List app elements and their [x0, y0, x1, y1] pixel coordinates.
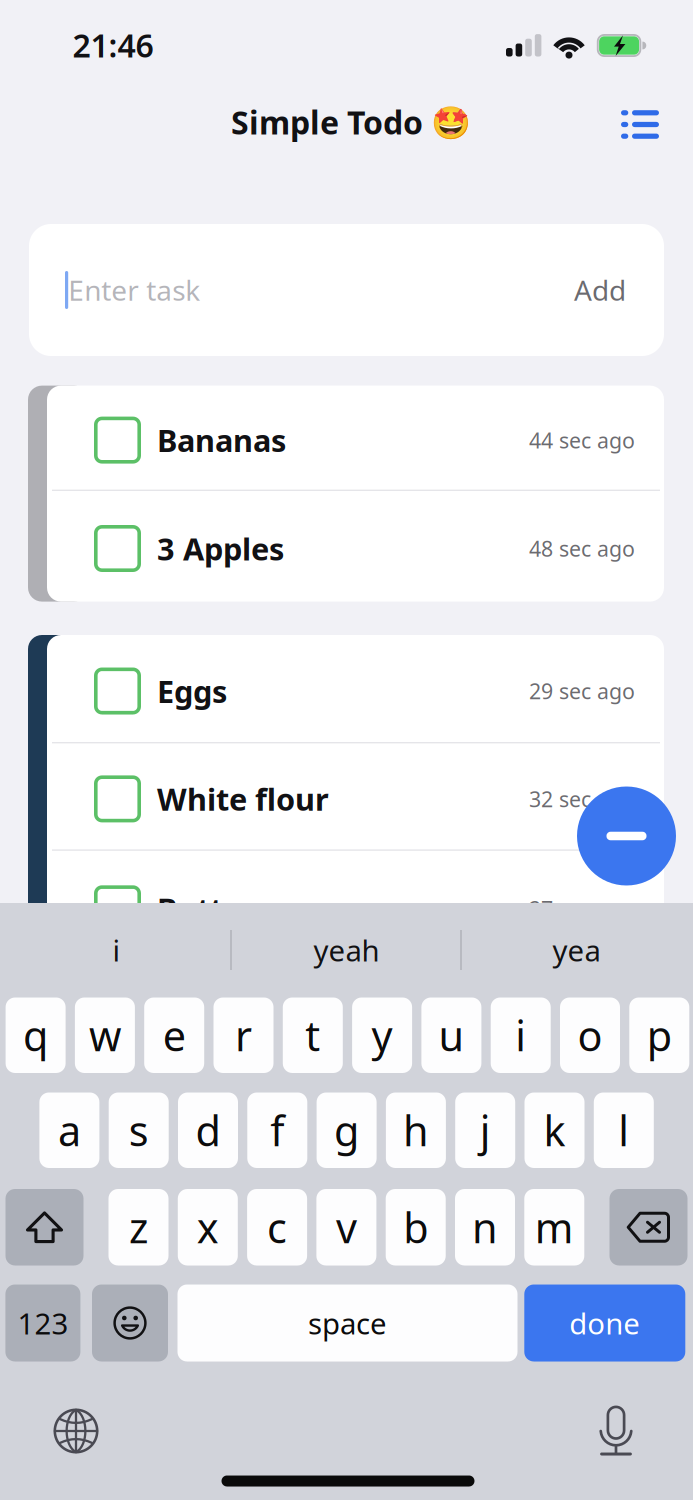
- button[interactable]: o: [560, 997, 620, 1073]
- button[interactable]: r: [213, 997, 273, 1073]
- button[interactable]: h: [386, 1092, 446, 1168]
- button[interactable]: n: [455, 1189, 515, 1265]
- button[interactable]: b: [386, 1189, 446, 1265]
- button[interactable]: Add: [560, 259, 640, 321]
- button[interactable]: l: [594, 1092, 654, 1168]
- button[interactable]: Eggs: [47, 635, 664, 742]
- staticText: u: [438, 1008, 464, 1063]
- staticText: Simple Todo 🤩: [231, 101, 471, 143]
- button[interactable]: q: [6, 997, 66, 1073]
- button[interactable]: t: [283, 997, 343, 1073]
- staticText: o: [577, 1008, 602, 1063]
- button[interactable]: a: [39, 1092, 99, 1168]
- staticText: Enter task: [68, 271, 200, 309]
- button[interactable]: p: [629, 997, 689, 1073]
- staticText: Eggs: [157, 671, 227, 711]
- button[interactable]: Emoji: [92, 1284, 168, 1361]
- staticText: g: [334, 1103, 359, 1158]
- staticText: f: [270, 1103, 284, 1158]
- staticText: White flour: [157, 778, 329, 819]
- staticText: t: [305, 1008, 320, 1063]
- staticText: 3 Apples: [157, 528, 284, 569]
- button[interactable]: Shift: [5, 1189, 83, 1265]
- staticText: Bananas: [157, 420, 286, 460]
- button[interactable]: c: [247, 1189, 307, 1265]
- staticText: 27 sec ago: [529, 895, 635, 923]
- staticText: m: [535, 1200, 574, 1255]
- button[interactable]: space: [177, 1284, 517, 1361]
- staticText: yea: [552, 930, 600, 969]
- button[interactable]: v: [316, 1189, 376, 1265]
- staticText: e: [163, 1008, 186, 1063]
- staticText: yeah: [313, 930, 379, 969]
- staticText: 48 sec ago: [529, 534, 635, 563]
- button[interactable]: Bananas: [47, 386, 664, 490]
- button[interactable]: 3 Apples: [47, 491, 664, 601]
- button[interactable]: x: [178, 1189, 238, 1265]
- staticText: b: [403, 1200, 428, 1255]
- staticText: 44 sec ago: [529, 426, 635, 454]
- staticText: a: [58, 1103, 81, 1158]
- staticText: done: [569, 1303, 640, 1342]
- staticText: l: [618, 1103, 629, 1158]
- staticText: 123: [17, 1303, 68, 1342]
- button[interactable]: f: [247, 1092, 307, 1168]
- button[interactable]: yeah: [232, 915, 461, 985]
- staticText: 32 sec ago: [529, 785, 635, 813]
- staticText: w: [89, 1008, 121, 1063]
- button[interactable]: w: [75, 997, 135, 1073]
- button[interactable]: m: [524, 1189, 584, 1265]
- button[interactable]: g: [317, 1092, 377, 1168]
- button[interactable]: List options: [608, 96, 672, 152]
- button[interactable]: k: [524, 1092, 584, 1168]
- staticText: q: [23, 1008, 48, 1063]
- staticText: p: [647, 1008, 672, 1063]
- button[interactable]: yea: [462, 915, 691, 985]
- staticText: z: [129, 1200, 148, 1255]
- staticText: 21:46: [72, 24, 153, 66]
- staticText: Butter: [157, 888, 255, 929]
- button[interactable]: Remove completed: [577, 786, 676, 885]
- staticText: j: [480, 1103, 491, 1158]
- button[interactable]: d: [178, 1092, 238, 1168]
- button[interactable]: u: [421, 997, 481, 1073]
- staticText: h: [403, 1103, 429, 1158]
- button[interactable]: Butter: [47, 851, 664, 962]
- staticText: space: [308, 1303, 387, 1342]
- button[interactable]: White flour: [47, 743, 664, 849]
- staticText: x: [197, 1200, 219, 1255]
- staticText: s: [129, 1103, 149, 1158]
- staticText: k: [543, 1103, 565, 1158]
- button[interactable]: y: [352, 997, 412, 1073]
- staticText: 29 sec ago: [529, 677, 635, 705]
- staticText: i: [112, 930, 120, 969]
- button[interactable]: s: [109, 1092, 169, 1168]
- button[interactable]: j: [455, 1092, 515, 1168]
- button[interactable]: Delete: [609, 1189, 687, 1265]
- button[interactable]: i: [491, 997, 551, 1073]
- button[interactable]: 123: [5, 1284, 80, 1361]
- staticText: d: [195, 1103, 220, 1158]
- button[interactable]: i: [2, 915, 231, 985]
- staticText: y: [372, 1008, 393, 1063]
- staticText: Add: [574, 271, 626, 309]
- button[interactable]: z: [108, 1189, 168, 1265]
- staticText: i: [515, 1008, 526, 1063]
- staticText: n: [472, 1200, 498, 1255]
- button[interactable]: Next keyboard: [46, 1401, 106, 1461]
- button[interactable]: done: [524, 1284, 685, 1361]
- staticText: v: [336, 1200, 357, 1255]
- staticText: r: [235, 1008, 252, 1063]
- button[interactable]: e: [144, 997, 204, 1073]
- staticText: c: [267, 1200, 287, 1255]
- button[interactable]: Dictation: [586, 1401, 646, 1461]
